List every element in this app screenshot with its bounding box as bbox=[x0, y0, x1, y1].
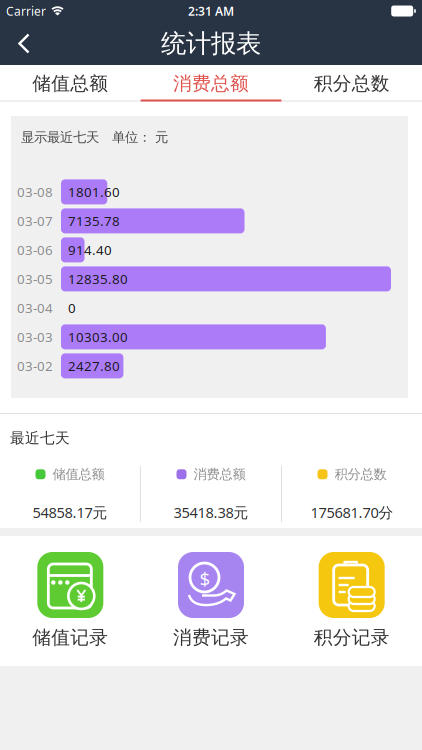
button[interactable]: 储值总额 bbox=[0, 65, 141, 101]
staticText: 03-03 bbox=[17, 328, 53, 346]
staticText: 03-06 bbox=[17, 241, 53, 259]
staticText: 储值总额 bbox=[52, 466, 104, 482]
staticText: 03-04 bbox=[17, 299, 53, 317]
button[interactable]: Back bbox=[0, 25, 42, 62]
staticText: 7135.78 bbox=[68, 212, 120, 230]
button[interactable]: 积分记录 bbox=[281, 552, 422, 649]
staticText: Carrier bbox=[6, 3, 46, 19]
staticText: 03-08 bbox=[17, 183, 53, 201]
staticText: 显示最近七天 单位： 元 bbox=[21, 129, 168, 145]
staticText: 消费总额 bbox=[193, 466, 245, 482]
staticText: 最近七天 bbox=[10, 429, 70, 447]
button[interactable]: $ bbox=[141, 552, 281, 649]
staticText: 54858.17元 bbox=[32, 502, 107, 522]
staticText: 03-05 bbox=[17, 270, 53, 288]
staticText: 35418.38元 bbox=[173, 502, 248, 522]
staticText: 积分总数 bbox=[334, 466, 386, 482]
staticText: 12835.80 bbox=[68, 270, 128, 288]
staticText: 积分总数 bbox=[314, 72, 390, 95]
staticText: 2:31 AM bbox=[188, 3, 234, 19]
staticText: 2427.80 bbox=[68, 357, 120, 375]
staticText: 1801.60 bbox=[68, 183, 120, 201]
staticText: 消费记录 bbox=[173, 626, 249, 649]
staticText: 储值记录 bbox=[32, 626, 108, 649]
staticText: 03-02 bbox=[17, 357, 53, 375]
button[interactable]: 消费总额 bbox=[141, 65, 281, 101]
button[interactable]: 积分总数 bbox=[281, 65, 422, 101]
staticText: 消费总额 bbox=[173, 72, 249, 95]
staticText: 积分记录 bbox=[314, 626, 390, 649]
staticText: 914.40 bbox=[68, 241, 112, 259]
staticText: $ bbox=[199, 566, 210, 591]
staticText: 统计报表 bbox=[161, 28, 261, 59]
button[interactable]: 储值记录 bbox=[0, 552, 141, 649]
staticText: 0 bbox=[68, 299, 76, 317]
staticText: 储值总额 bbox=[32, 72, 108, 95]
staticText: 175681.70分 bbox=[310, 502, 393, 522]
staticText: 03-07 bbox=[17, 212, 53, 230]
staticText: 10303.00 bbox=[68, 328, 128, 346]
